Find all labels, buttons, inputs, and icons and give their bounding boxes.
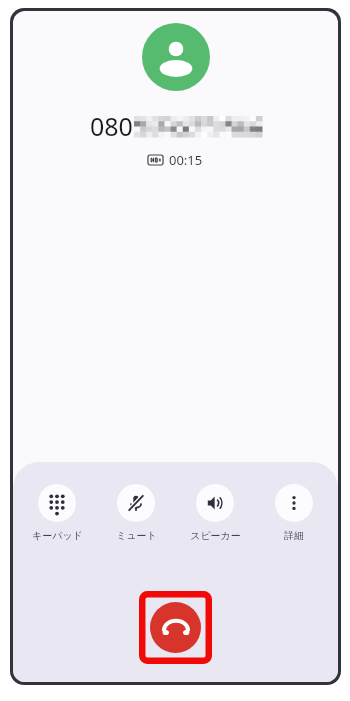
staticText: 詳細 [284, 529, 304, 542]
button[interactable]: Keypad [22, 484, 92, 542]
staticText: スピーカー [190, 529, 241, 542]
button[interactable]: Speaker [180, 484, 250, 542]
staticText: ミュート [116, 529, 157, 542]
staticText: キーパッド [32, 529, 83, 542]
button[interactable]: Mute [101, 484, 171, 542]
button[interactable]: End call [150, 602, 201, 653]
staticText: 080 [90, 109, 133, 143]
button[interactable]: More options [259, 484, 329, 542]
staticText: 00:15 [169, 151, 203, 169]
